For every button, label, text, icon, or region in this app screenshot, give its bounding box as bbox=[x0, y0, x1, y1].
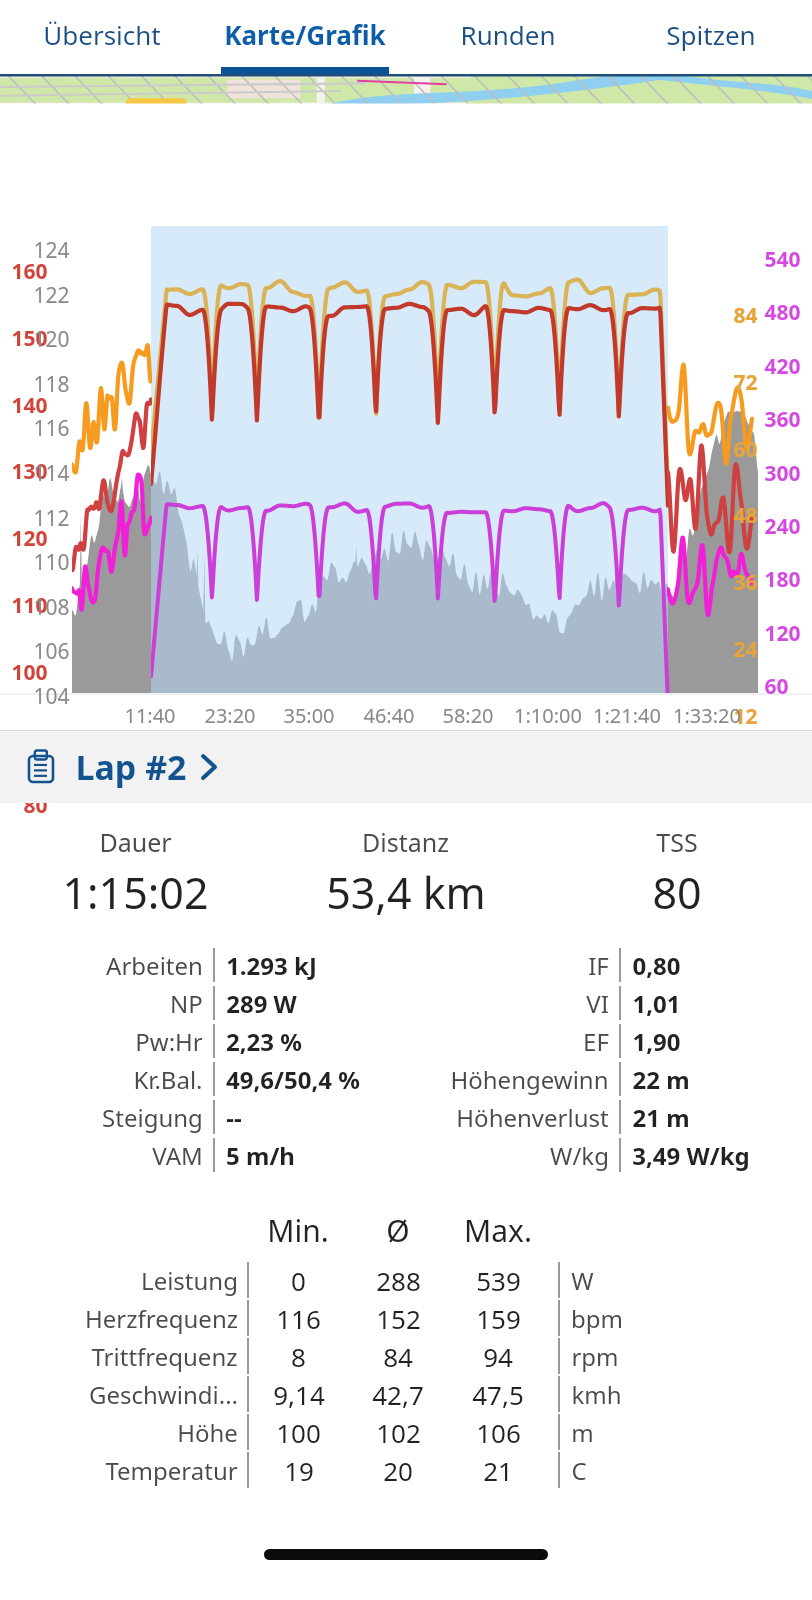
staticText: 21 m bbox=[632, 1101, 690, 1134]
button[interactable]: Runden bbox=[406, 0, 609, 74]
staticText: 180 bbox=[764, 565, 801, 594]
staticText: kmh bbox=[571, 1378, 622, 1411]
staticText: W/kg bbox=[550, 1139, 609, 1172]
staticText: Min. bbox=[267, 1210, 329, 1251]
staticText: 9,14 bbox=[273, 1377, 325, 1412]
staticText: Runden bbox=[460, 17, 556, 52]
staticText: 150 bbox=[11, 324, 48, 353]
staticText: 160 bbox=[11, 257, 48, 286]
staticText: 102 bbox=[33, 727, 70, 756]
staticText: 480 bbox=[764, 298, 801, 327]
staticText: 114 bbox=[33, 459, 70, 488]
staticText: Trittfrequenz bbox=[91, 1340, 238, 1373]
staticText: Leistung bbox=[141, 1264, 238, 1297]
staticText: Max. bbox=[464, 1210, 532, 1251]
staticText: 48 bbox=[733, 501, 758, 530]
staticText: 35:00 bbox=[283, 702, 335, 729]
staticText: Arbeiten bbox=[106, 949, 203, 982]
staticText: 1:10:00 bbox=[514, 702, 582, 729]
staticText: 49,6/50,4 % bbox=[226, 1063, 360, 1096]
staticText: 1,01 bbox=[632, 987, 681, 1020]
staticText: 22 m bbox=[632, 1063, 690, 1096]
staticText: Kr.Bal. bbox=[133, 1063, 203, 1096]
staticText: 300 bbox=[764, 459, 801, 488]
staticText: Geschwindi... bbox=[89, 1378, 238, 1411]
staticText: bpm bbox=[571, 1302, 623, 1335]
staticText: VAM bbox=[152, 1139, 203, 1172]
staticText: 159 bbox=[476, 1301, 521, 1336]
staticText: 0 bbox=[764, 726, 777, 755]
staticText: Temperatur bbox=[105, 1454, 238, 1487]
staticText: 120 bbox=[764, 619, 801, 648]
button[interactable]: Spitzen bbox=[609, 0, 812, 74]
staticText: TSS bbox=[656, 825, 698, 859]
staticText: Steigung bbox=[102, 1101, 203, 1134]
staticText: 11:40 bbox=[124, 702, 176, 729]
staticText: 100 bbox=[276, 1415, 321, 1450]
button[interactable]: Übersicht bbox=[0, 0, 203, 74]
staticText: 53,4 km bbox=[326, 863, 486, 922]
staticText: 84 bbox=[733, 301, 758, 330]
staticText: 106 bbox=[33, 637, 70, 666]
staticText: EF bbox=[583, 1025, 609, 1058]
staticText: 47,5 bbox=[472, 1377, 524, 1412]
staticText: 110 bbox=[33, 548, 70, 577]
staticText: 3,49 W/kg bbox=[632, 1139, 750, 1172]
staticText: 84 bbox=[383, 1339, 413, 1374]
staticText: 24 bbox=[733, 635, 758, 664]
staticText: 60 bbox=[733, 435, 758, 464]
staticText: Übersicht bbox=[43, 17, 161, 52]
staticText: 80 bbox=[652, 863, 702, 922]
button[interactable]: Karte/Grafik bbox=[203, 0, 406, 74]
staticText: 240 bbox=[764, 512, 801, 541]
staticText: 12 bbox=[733, 702, 758, 731]
staticText: 60 bbox=[764, 672, 789, 701]
staticText: 120 bbox=[33, 325, 70, 354]
staticText: 118 bbox=[33, 370, 70, 399]
staticText: 124 bbox=[33, 236, 70, 265]
staticText: Spitzen bbox=[666, 17, 756, 52]
staticText: Pw:Hr bbox=[135, 1025, 203, 1058]
staticText: 540 bbox=[764, 245, 801, 274]
staticText: 420 bbox=[764, 352, 801, 381]
staticText: 120 bbox=[11, 524, 48, 553]
staticText: 288 bbox=[376, 1263, 421, 1298]
staticText: 122 bbox=[33, 281, 70, 310]
staticText: 21 bbox=[483, 1453, 513, 1488]
staticText: 0 bbox=[291, 1263, 306, 1298]
staticText: 72 bbox=[733, 368, 758, 397]
staticText: W bbox=[571, 1264, 594, 1297]
staticText: 42,7 bbox=[372, 1377, 424, 1412]
staticText: 1:33:20 bbox=[673, 702, 741, 729]
staticText: 1.293 kJ bbox=[226, 949, 317, 982]
staticText: Höhenverlust bbox=[456, 1101, 609, 1134]
staticText: 46:40 bbox=[363, 702, 415, 729]
staticText: 112 bbox=[33, 504, 70, 533]
staticText: IF bbox=[588, 949, 609, 982]
staticText: 2,23 % bbox=[226, 1025, 302, 1058]
staticText: Höhengewinn bbox=[450, 1063, 609, 1096]
staticText: 130 bbox=[11, 457, 48, 486]
button[interactable]: Lap #2 bbox=[0, 731, 812, 803]
staticText: -- bbox=[226, 1101, 242, 1134]
staticText: Distanz bbox=[362, 825, 449, 859]
staticText: 80 bbox=[23, 791, 48, 820]
staticText: 539 bbox=[476, 1263, 521, 1298]
staticText: 1:21:40 bbox=[593, 702, 661, 729]
staticText: 360 bbox=[764, 405, 801, 434]
staticText: 140 bbox=[11, 391, 48, 420]
staticText: 94 bbox=[483, 1339, 513, 1374]
staticText: Ø bbox=[386, 1210, 410, 1251]
staticText: rpm bbox=[571, 1340, 619, 1373]
staticText: 36 bbox=[733, 568, 758, 597]
staticText: 58:20 bbox=[442, 702, 494, 729]
staticText: 106 bbox=[476, 1415, 521, 1450]
staticText: NP bbox=[170, 987, 203, 1020]
staticText: Dauer bbox=[99, 825, 172, 859]
staticText: Höhe bbox=[177, 1416, 238, 1449]
staticText: Lap #2 bbox=[75, 744, 187, 790]
staticText: C bbox=[571, 1454, 587, 1487]
staticText: 8 bbox=[291, 1339, 306, 1374]
staticText: Karte/Grafik bbox=[224, 17, 386, 52]
